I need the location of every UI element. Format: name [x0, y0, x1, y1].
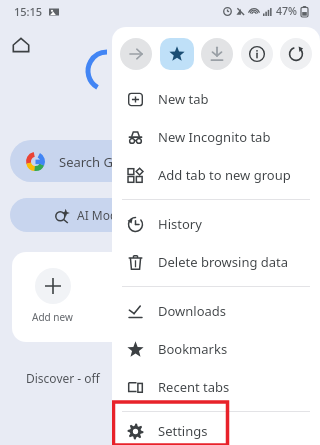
staticText: Add new: [32, 310, 73, 324]
staticText: Search Google or type URL: [59, 153, 190, 171]
staticText: New tab: [158, 90, 209, 108]
staticText: Settings: [158, 422, 208, 440]
staticText: New Incognito tab: [158, 128, 271, 146]
button[interactable]: Home: [10, 34, 32, 56]
button[interactable]: Add new: [12, 252, 162, 342]
staticText: 15:15: [14, 4, 43, 19]
button[interactable]: Settings: [112, 417, 320, 445]
button[interactable]: Search Google or type URL: [10, 140, 190, 182]
staticText: Delete browsing data: [158, 253, 289, 271]
staticText: Recent tabs: [158, 378, 230, 396]
staticText: 47%: [276, 4, 297, 18]
button[interactable]: Bookmarks: [112, 330, 320, 368]
button[interactable]: Page info: [241, 38, 273, 70]
button[interactable]: Downloads: [112, 292, 320, 330]
button[interactable]: New tab: [112, 80, 320, 118]
button[interactable]: AI Mode: [10, 198, 190, 232]
button[interactable]: Forward: [120, 38, 152, 70]
button[interactable]: History: [112, 205, 320, 243]
staticText: Discover - off: [26, 370, 100, 386]
staticText: AI Mode: [77, 207, 125, 223]
button[interactable]: Add tab to new group: [112, 156, 320, 194]
staticText: Bookmarks: [158, 340, 228, 358]
staticText: Downloads: [158, 302, 227, 320]
button[interactable]: New Incognito tab: [112, 118, 320, 156]
button[interactable]: Delete browsing data: [112, 243, 320, 281]
button[interactable]: Recent tabs: [112, 368, 320, 406]
button[interactable]: Reload: [280, 38, 312, 70]
button[interactable]: Download page: [201, 38, 233, 70]
staticText: Add tab to new group: [158, 166, 291, 184]
staticText: History: [158, 215, 202, 233]
button[interactable]: Bookmark this page: [160, 38, 194, 70]
